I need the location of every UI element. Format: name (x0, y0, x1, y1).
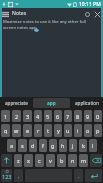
staticText: n (71, 157, 75, 164)
staticText: 2 (15, 113, 19, 120)
staticText: 6 (56, 113, 60, 120)
staticText: e (26, 127, 30, 134)
button[interactable]: o (84, 124, 92, 137)
staticText: 7 (66, 113, 70, 120)
button[interactable]: Close (92, 9, 102, 19)
staticText: application (75, 100, 99, 106)
staticText: t (47, 127, 49, 134)
button[interactable]: Minimize (82, 9, 92, 19)
button[interactable]: w (12, 124, 21, 137)
button[interactable]: e (23, 124, 32, 137)
staticText: p (96, 127, 100, 134)
button[interactable]: k (79, 139, 87, 152)
button[interactable]: n (68, 154, 77, 167)
button[interactable]: Shift (1, 154, 12, 167)
staticText: k (82, 142, 85, 149)
button[interactable]: i (74, 124, 82, 137)
staticText: 3 (26, 113, 30, 120)
button[interactable]: 1 (1, 110, 10, 122)
button[interactable]: app (33, 98, 70, 108)
staticText: . (78, 172, 80, 180)
button[interactable]: 0 (94, 110, 102, 122)
button[interactable]: s (18, 139, 27, 152)
staticText: l (92, 142, 94, 149)
button[interactable]: r (34, 124, 42, 137)
staticText: j (72, 142, 74, 149)
button[interactable]: appreciate (0, 97, 33, 109)
button[interactable]: u (64, 124, 72, 137)
button[interactable]: c (35, 154, 44, 167)
staticText: q (4, 127, 8, 134)
button[interactable]: j (69, 139, 77, 152)
button[interactable]: v (46, 154, 55, 167)
staticText: 8 (76, 113, 80, 120)
staticText: m (81, 157, 87, 164)
button[interactable]: 5 (44, 110, 52, 122)
staticText: 4 (36, 113, 40, 120)
button[interactable]: Menu (2, 9, 9, 19)
staticText: c (38, 157, 41, 164)
button[interactable]: 3 (23, 110, 32, 122)
button[interactable]: d (29, 139, 37, 152)
button[interactable]: 2 (12, 110, 21, 122)
button[interactable]: 6 (54, 110, 62, 122)
staticText: 10:11 PM (79, 1, 101, 8)
button[interactable]: a (7, 139, 16, 152)
button[interactable]: y (54, 124, 62, 137)
staticText: 1 (4, 113, 8, 120)
staticText: y (57, 127, 60, 134)
staticText: 9 (86, 113, 90, 120)
button[interactable]: q (1, 124, 10, 137)
staticText: 5 (46, 113, 50, 120)
button[interactable]: x (24, 154, 33, 167)
staticText: r (37, 127, 40, 134)
button[interactable]: . (74, 169, 83, 182)
staticText: x (27, 157, 30, 164)
button[interactable]: Backspace (90, 154, 102, 167)
staticText: u (66, 127, 70, 134)
button[interactable]: 4 (34, 110, 42, 122)
button[interactable]: 7 (64, 110, 72, 122)
button[interactable]: 123 (1, 169, 12, 182)
button[interactable]: z (14, 154, 22, 167)
staticText: Notes (12, 10, 27, 17)
staticText: , (18, 172, 20, 180)
staticText: 0 (96, 113, 100, 120)
button[interactable]: l (89, 139, 97, 152)
staticText: f (42, 142, 44, 149)
staticText: o (86, 127, 90, 134)
button[interactable]: h (59, 139, 67, 152)
staticText: 123 (2, 173, 12, 180)
button[interactable]: application (70, 97, 103, 109)
button[interactable]: 9 (84, 110, 92, 122)
staticText: appreciate (5, 100, 28, 106)
button[interactable]: p (94, 124, 102, 137)
staticText: i (77, 127, 79, 134)
button[interactable]: b (57, 154, 66, 167)
staticText: g (51, 142, 55, 149)
button[interactable]: 8 (74, 110, 82, 122)
button[interactable]: f (39, 139, 47, 152)
button[interactable]: t (44, 124, 52, 137)
staticText: screen notes app (3, 25, 37, 31)
button[interactable]: Enter (85, 169, 102, 182)
staticText: w (14, 127, 19, 134)
staticText: a (10, 142, 14, 149)
staticText: s (21, 142, 24, 149)
staticText: app (47, 100, 56, 106)
staticText: b (60, 157, 64, 164)
staticText: v (49, 157, 52, 164)
staticText: Maximize notes to use it like any other … (3, 19, 86, 25)
staticText: d (31, 142, 35, 149)
staticText: h (61, 142, 65, 149)
staticText: z (17, 157, 20, 164)
button[interactable]: , (14, 169, 23, 182)
button[interactable]: m (79, 154, 88, 167)
button[interactable]: g (49, 139, 57, 152)
